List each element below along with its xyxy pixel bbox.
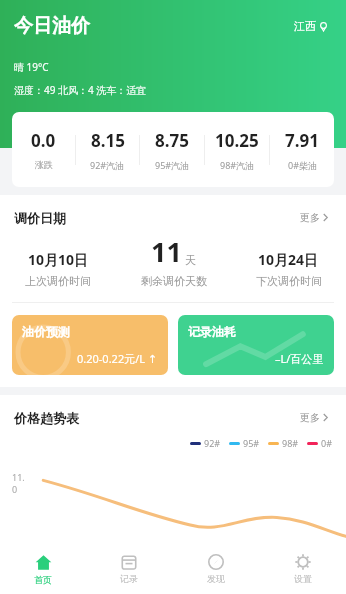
- staticText: 95#汽油: [155, 159, 190, 171]
- staticText: 10月10日: [28, 250, 89, 269]
- staticText: 0: [12, 483, 18, 495]
- staticText: 油价预测: [22, 324, 70, 339]
- staticText: 上次调价时间: [25, 274, 91, 288]
- button[interactable]: 更多: [297, 408, 332, 427]
- staticText: –L/百公里: [275, 351, 324, 366]
- staticText: 10月24日: [258, 250, 319, 269]
- button[interactable]: 江西: [290, 15, 332, 37]
- staticText: 剩余调价天数: [141, 274, 207, 288]
- staticText: 95#: [243, 437, 260, 449]
- staticText: 价格趋势表: [14, 410, 79, 426]
- staticText: 记录油耗: [188, 324, 236, 339]
- staticText: 发现: [207, 573, 225, 584]
- staticText: 更多: [300, 211, 320, 224]
- staticText: 今日油价: [14, 14, 90, 38]
- staticText: 0#柴油: [288, 159, 317, 171]
- staticText: 晴 19°C: [14, 60, 49, 74]
- staticText: 8.75: [155, 129, 189, 152]
- button[interactable]: 首页: [0, 544, 86, 594]
- staticText: 设置: [294, 573, 312, 584]
- staticText: 调价日期: [14, 210, 66, 226]
- staticText: 10.25: [215, 129, 259, 152]
- staticText: 98#汽油: [220, 159, 255, 171]
- button[interactable]: 油价预测: [12, 315, 168, 375]
- staticText: 8.15: [91, 129, 125, 152]
- staticText: 湿度：49 北风：4 洗车：适宜: [14, 83, 147, 97]
- button[interactable]: 更多: [297, 208, 332, 227]
- staticText: 下次调价时间: [256, 274, 322, 288]
- staticText: 92#汽油: [90, 159, 125, 171]
- staticText: 江西: [294, 19, 316, 33]
- button[interactable]: 0.0: [12, 112, 334, 187]
- staticText: 记录: [120, 573, 138, 584]
- staticText: 7.91: [285, 129, 319, 152]
- staticText: 11.: [12, 471, 25, 483]
- staticText: 天: [185, 253, 196, 267]
- button[interactable]: 记录油耗: [178, 315, 334, 375]
- staticText: 0.0: [31, 129, 56, 152]
- staticText: 0#: [321, 437, 332, 449]
- staticText: 11: [151, 233, 182, 270]
- staticText: 98#: [282, 437, 299, 449]
- staticText: 首页: [34, 574, 52, 585]
- staticText: 92#: [204, 437, 221, 449]
- button[interactable]: 发现: [172, 544, 259, 594]
- staticText: 涨跌: [35, 159, 53, 170]
- staticText: 0.20-0.22元/L ↑: [77, 351, 158, 366]
- staticText: 更多: [300, 411, 320, 424]
- button[interactable]: 记录: [86, 544, 172, 594]
- button[interactable]: 设置: [259, 544, 346, 594]
